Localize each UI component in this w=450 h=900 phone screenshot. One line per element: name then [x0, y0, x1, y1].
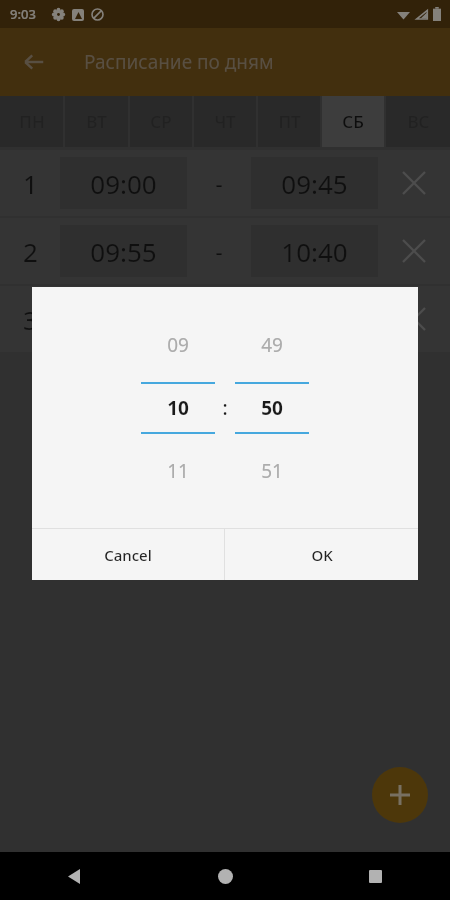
button[interactable]: СБ	[322, 96, 384, 147]
staticText: 1	[23, 166, 38, 201]
button[interactable]: 50	[235, 384, 309, 432]
button[interactable]: 10:40	[251, 225, 378, 277]
staticText: 09:55	[90, 234, 157, 269]
staticText: СБ	[342, 110, 364, 133]
button[interactable]: Back	[51, 852, 99, 900]
staticText: 11	[167, 458, 189, 484]
button[interactable]: 09:00	[60, 157, 187, 209]
button[interactable]: Delete	[378, 286, 450, 352]
button[interactable]: Cancel	[32, 529, 224, 580]
staticText: OK	[311, 545, 333, 565]
button[interactable]: Home	[201, 852, 249, 900]
staticText: 2	[23, 234, 38, 269]
button[interactable]: Delete	[378, 218, 450, 284]
button[interactable]: Back	[10, 38, 58, 86]
button[interactable]: 10:50	[60, 293, 187, 345]
staticText: 10	[167, 395, 189, 421]
button[interactable]: 1	[0, 150, 450, 216]
staticText: 09:45	[281, 166, 348, 201]
staticText: :	[222, 395, 228, 421]
staticText: 09:00	[90, 166, 157, 201]
button[interactable]: 3	[0, 286, 450, 352]
staticText: 9:03	[10, 5, 36, 23]
button[interactable]: 09:55	[60, 225, 187, 277]
button[interactable]: OK	[225, 529, 418, 580]
staticText: 51	[261, 458, 283, 484]
staticText: 49	[261, 332, 283, 358]
button[interactable]: Delete	[378, 150, 450, 216]
button[interactable]: 2	[0, 218, 450, 284]
button[interactable]: Recents	[351, 852, 399, 900]
button[interactable]: 10	[141, 384, 215, 432]
staticText: -	[215, 168, 223, 198]
staticText: 09	[167, 332, 189, 358]
button[interactable]: 11:35	[251, 293, 378, 345]
staticText: Расписание по дням	[84, 49, 274, 75]
staticText: 3	[23, 302, 38, 337]
staticText: 50	[261, 395, 283, 421]
staticText: Cancel	[104, 545, 152, 565]
button[interactable]: Add	[372, 767, 428, 823]
staticText: 10:40	[281, 234, 348, 269]
staticText: -	[215, 236, 223, 266]
button[interactable]: 09:45	[251, 157, 378, 209]
